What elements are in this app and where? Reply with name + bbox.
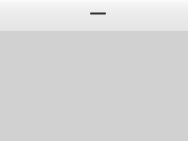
- button[interactable]: Drag handle: [88, 9, 108, 18]
